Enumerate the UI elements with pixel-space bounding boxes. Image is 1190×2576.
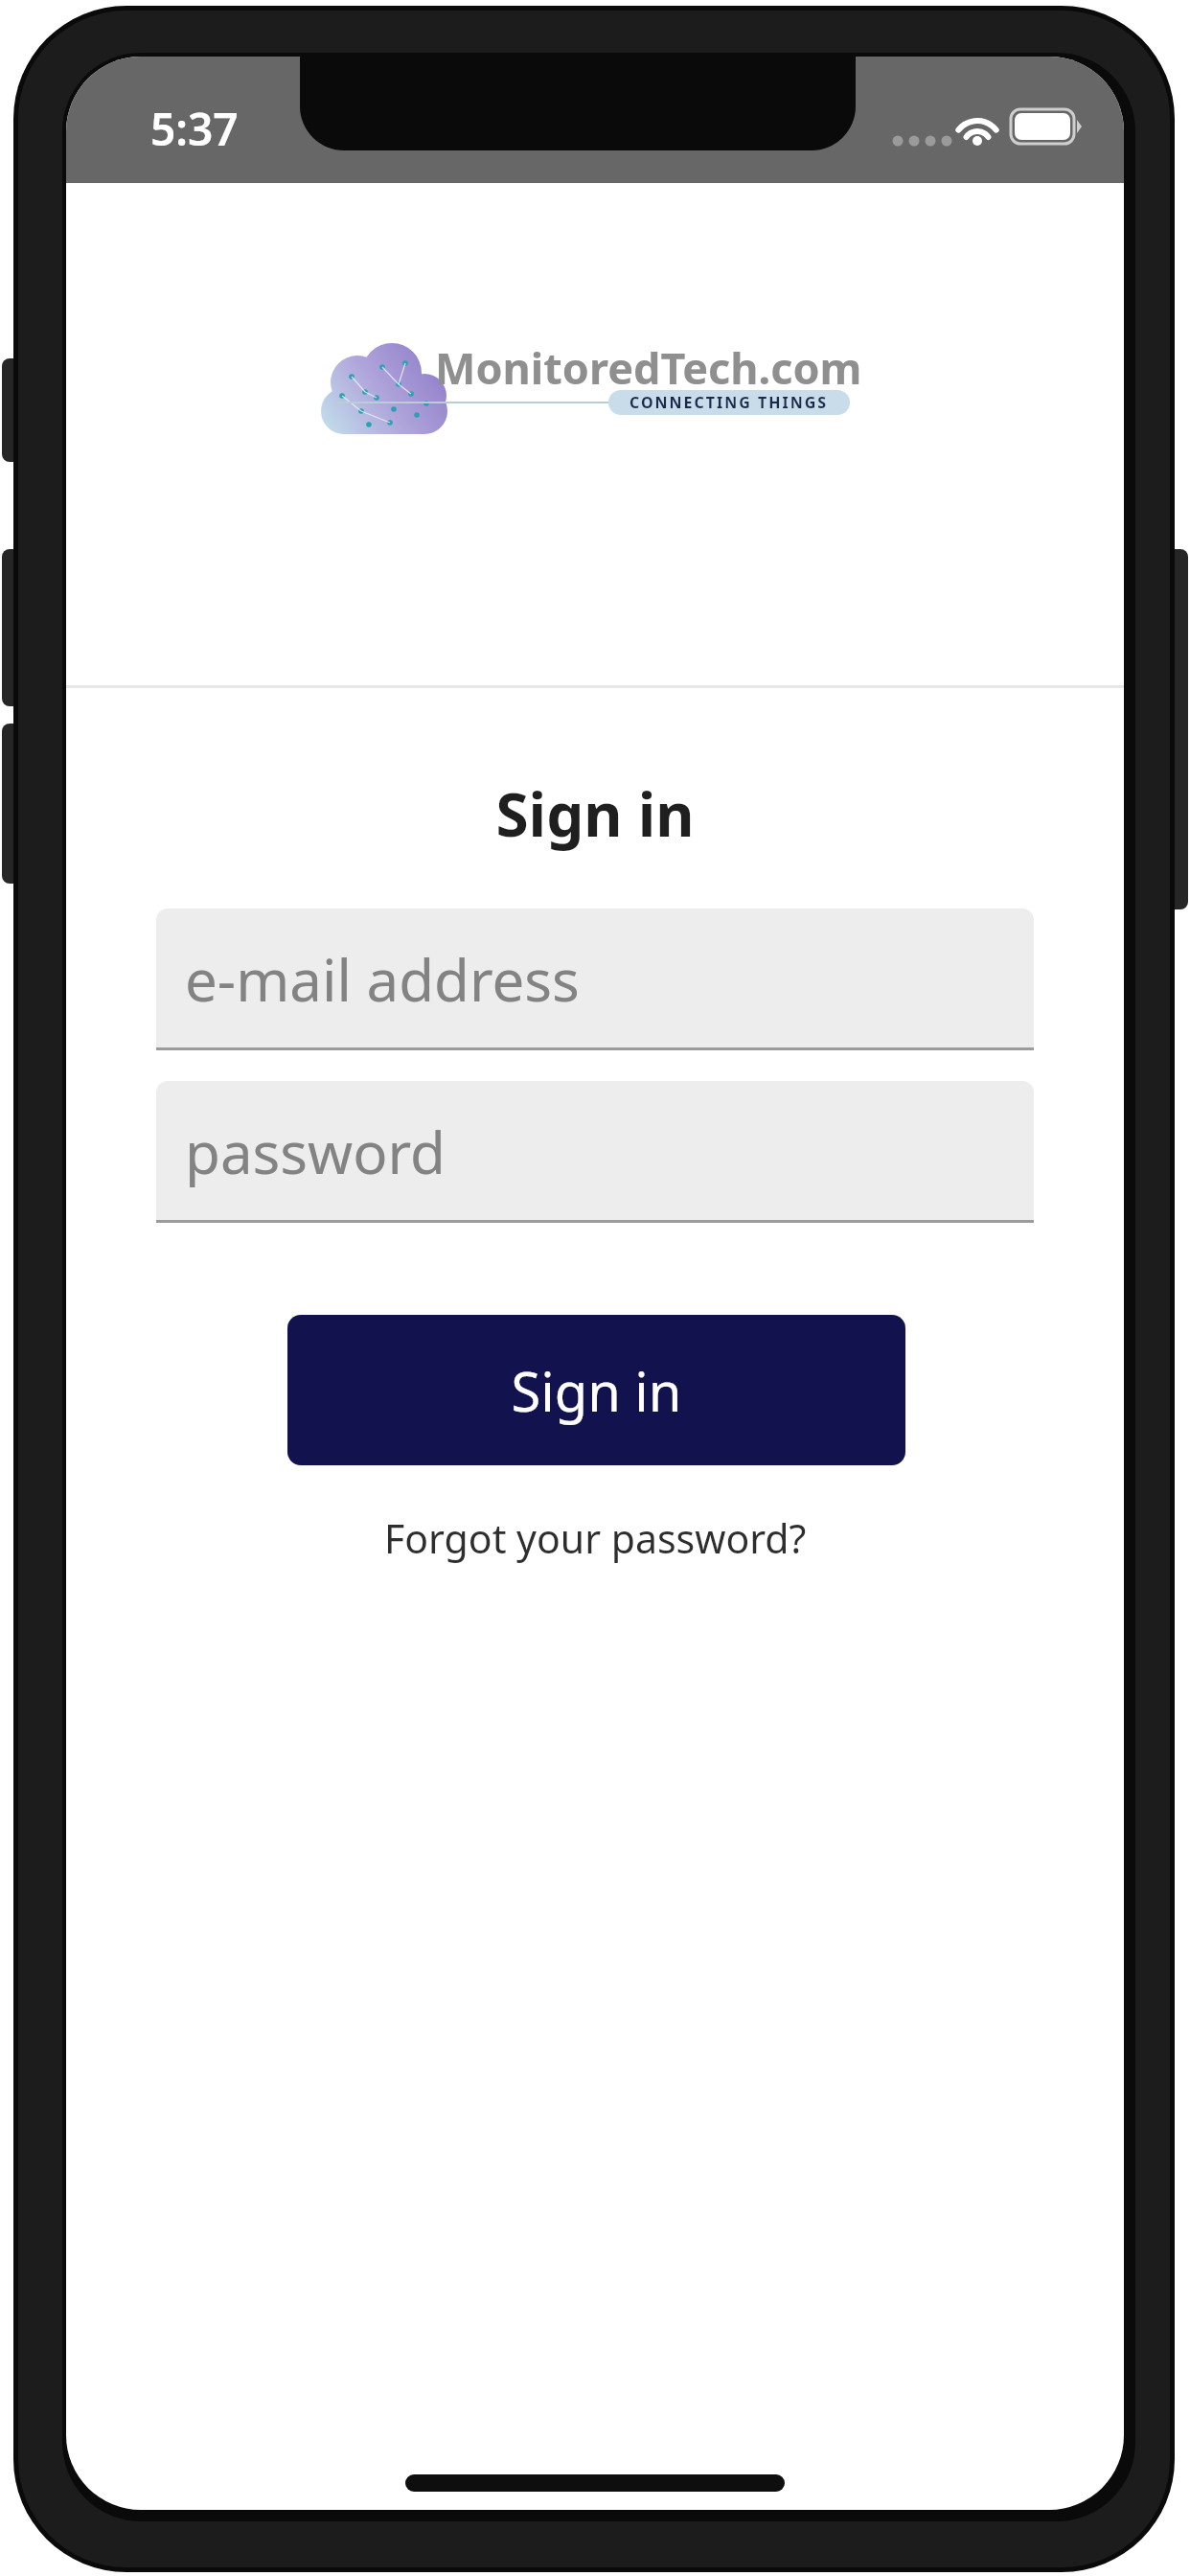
staticText: Sign in — [287, 1354, 905, 1427]
staticText: Sign in — [66, 773, 1124, 854]
staticText: password — [185, 1113, 446, 1191]
staticText: e-mail address — [185, 940, 580, 1019]
staticText: MonitoredTech.com — [435, 338, 862, 397]
button[interactable]: password — [156, 1081, 1034, 1223]
button[interactable]: Forgot your password? — [260, 1506, 930, 1571]
staticText: Forgot your password? — [384, 1511, 807, 1565]
staticText: 5:37 — [150, 99, 323, 159]
button[interactable]: Sign in — [287, 1315, 905, 1465]
button[interactable]: e-mail address — [156, 908, 1034, 1050]
staticText: CONNECTING THINGS — [629, 392, 829, 413]
